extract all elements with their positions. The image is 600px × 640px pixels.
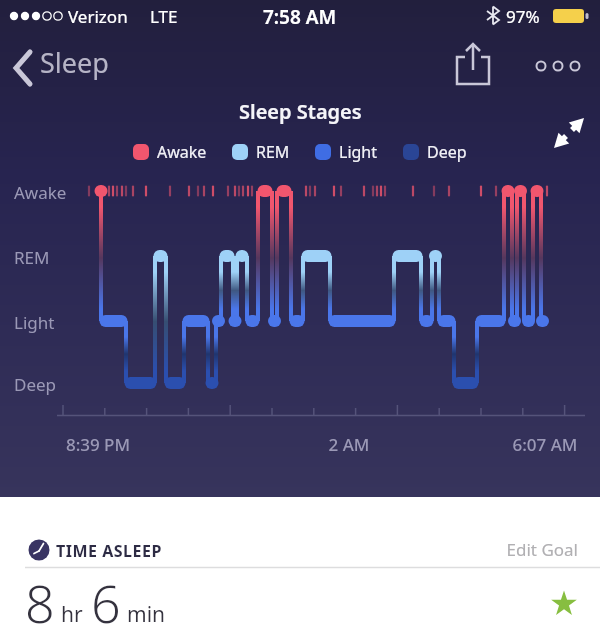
staticText: Verizon [68,5,128,28]
staticText: Light [14,311,55,334]
staticText: REM [14,246,50,269]
staticText: Awake [14,181,67,204]
staticText: Sleep [40,44,109,81]
staticText: 8:39 PM [48,433,148,456]
staticText: Deep [427,141,467,163]
staticText: 2 AM [299,433,399,456]
staticText: Deep [14,373,57,396]
button[interactable] [450,40,496,90]
staticText: Edit Goal [455,538,578,561]
button[interactable]: Sleep [10,44,120,92]
staticText: Sleep Stages [239,98,362,125]
staticText: 7:58 AM [263,4,337,30]
button[interactable] [548,112,590,154]
button[interactable] [530,50,590,84]
staticText: min [127,600,166,629]
staticText: Awake [157,141,207,163]
button[interactable]: Edit Goal [455,538,578,564]
staticText: 6 [91,567,121,638]
staticText: Light [339,141,378,163]
staticText: LTE [150,5,178,28]
staticText: 6:07 AM [495,433,595,456]
staticText: 97% [506,5,540,28]
staticText: REM [256,141,290,163]
staticText: TIME ASLEEP [56,540,162,562]
staticText: 8 [25,567,55,638]
staticText: hr [61,600,83,629]
